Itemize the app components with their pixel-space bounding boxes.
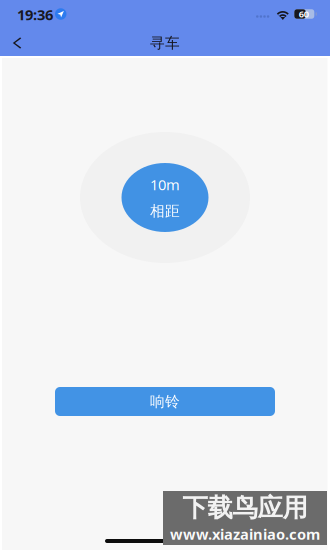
- staticText: 响铃: [150, 392, 180, 410]
- staticText: 19:36: [17, 5, 53, 24]
- button[interactable]: 响铃: [55, 387, 275, 416]
- staticText: 60: [299, 8, 309, 20]
- button[interactable]: Back: [0, 28, 34, 56]
- staticText: www.xiazainiao.com: [170, 524, 320, 544]
- staticText: 相距: [150, 202, 180, 220]
- staticText: 寻车: [150, 34, 180, 52]
- staticText: 10m: [150, 175, 180, 194]
- staticText: 下载鸟应用: [182, 492, 307, 523]
